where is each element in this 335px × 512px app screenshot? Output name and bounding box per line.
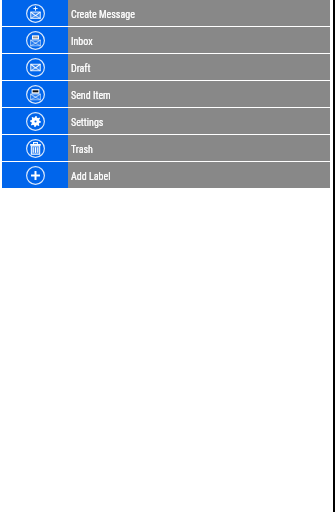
other: Trash [2, 135, 68, 161]
button[interactable]: Create Message [0, 0, 335, 26]
button[interactable]: Add Label [0, 162, 335, 188]
other: Create Message [2, 0, 68, 26]
staticText: Settings [71, 117, 104, 129]
staticText: Inbox [71, 36, 93, 48]
staticText: Create Message [71, 9, 135, 21]
button[interactable]: Inbox [0, 27, 335, 53]
button[interactable]: Trash [0, 135, 335, 161]
other: Send Item [2, 81, 68, 107]
other: Draft [2, 54, 68, 80]
other: Add Label [2, 162, 68, 188]
staticText: Draft [71, 63, 91, 75]
button[interactable]: Send Item [0, 81, 335, 107]
staticText: Trash [71, 144, 93, 156]
button[interactable]: Draft [0, 54, 335, 80]
other: Inbox [2, 27, 68, 53]
button[interactable]: Settings [0, 108, 335, 134]
other: Settings [2, 108, 68, 134]
staticText: Send Item [71, 90, 111, 102]
staticText: Add Label [71, 171, 111, 183]
